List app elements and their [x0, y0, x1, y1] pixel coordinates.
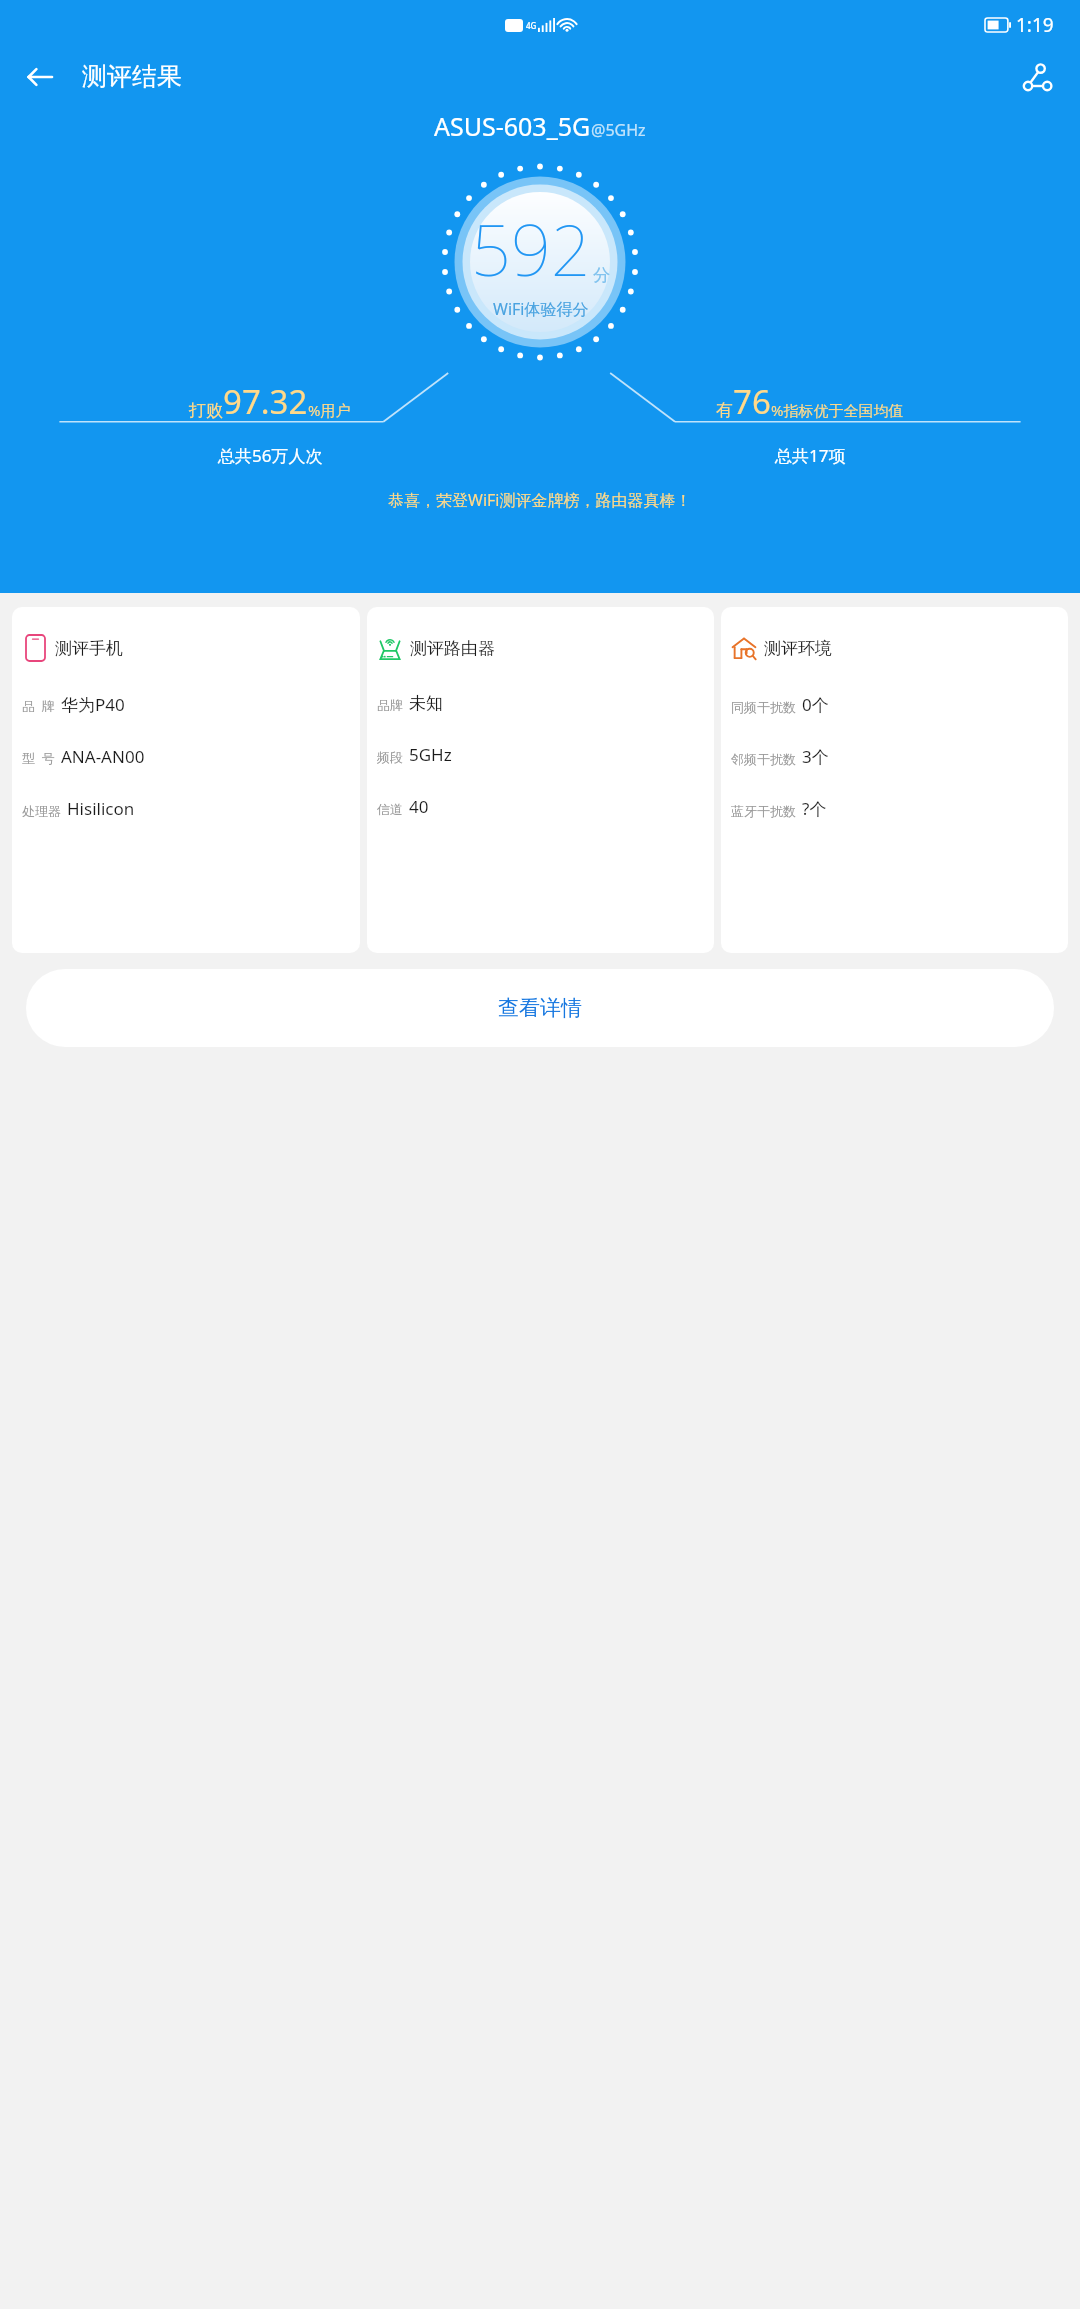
staticText: ?个: [802, 797, 827, 820]
staticText: 5GHz: [409, 743, 452, 766]
staticText: Hisilicon: [67, 797, 135, 820]
staticText: 未知: [409, 693, 443, 714]
staticText: %指标优于全国均值: [771, 400, 904, 420]
staticText: 分: [593, 265, 610, 286]
staticText: 总共17项: [775, 444, 846, 467]
staticText: 频段: [377, 749, 403, 765]
staticText: %用户: [308, 400, 351, 420]
staticText: 76: [733, 379, 771, 424]
staticText: 总共56万人次: [218, 444, 323, 467]
button[interactable]: 查看详情: [26, 969, 1054, 1047]
staticText: @5GHz: [591, 119, 646, 141]
button[interactable]: 测评路由器: [367, 607, 714, 953]
staticText: 1:19: [1016, 12, 1054, 38]
staticText: 592: [471, 201, 591, 296]
staticText: 4G: [526, 20, 537, 31]
staticText: 信道: [377, 801, 403, 817]
staticText: 型 号: [22, 749, 55, 767]
staticText: 同频干扰数: [731, 699, 796, 715]
staticText: 华为P40: [61, 693, 125, 716]
staticText: 40: [409, 795, 429, 818]
staticText: 97.32: [223, 379, 308, 424]
staticText: 测评手机: [55, 638, 123, 659]
staticText: 品牌: [377, 697, 403, 713]
staticText: 测评环境: [764, 638, 832, 659]
staticText: 0个: [802, 693, 829, 716]
staticText: 恭喜，荣登WiFi测评金牌榜，路由器真棒！: [388, 489, 692, 511]
button[interactable]: Share: [1010, 50, 1064, 103]
staticText: WiFi体验得分: [493, 298, 589, 320]
button[interactable]: 测评环境: [721, 607, 1068, 953]
staticText: 有: [716, 400, 733, 421]
staticText: ANA-AN00: [61, 745, 145, 768]
staticText: 测评结果: [82, 61, 182, 92]
staticText: 3个: [802, 745, 829, 768]
staticText: 品 牌: [22, 697, 55, 715]
staticText: 测评路由器: [410, 638, 495, 659]
staticText: 蓝牙干扰数: [731, 803, 796, 819]
staticText: 处理器: [22, 803, 61, 819]
staticText: 查看详情: [498, 995, 582, 1021]
staticText: 邻频干扰数: [731, 751, 796, 767]
staticText: ASUS-603_5G: [434, 109, 591, 143]
button[interactable]: Back: [12, 50, 66, 103]
staticText: 打败: [189, 400, 223, 421]
button[interactable]: 测评手机: [12, 607, 360, 953]
